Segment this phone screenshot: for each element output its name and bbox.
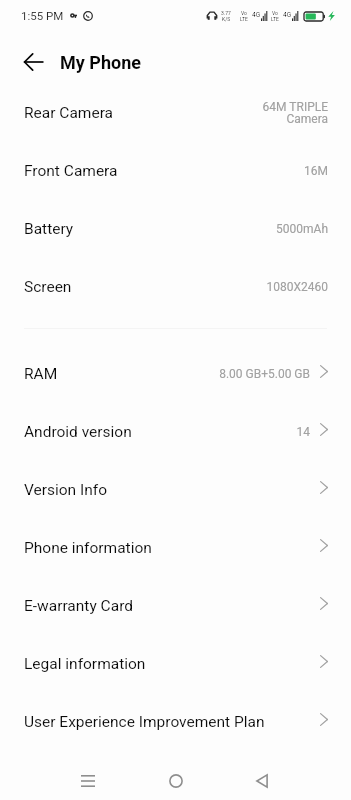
staticText: Screen	[24, 278, 72, 296]
staticText: Vo	[241, 10, 247, 16]
button[interactable]: Screen	[0, 258, 351, 316]
staticText: 1080X2460	[266, 280, 328, 294]
staticText: Phone information	[24, 539, 152, 557]
button[interactable]: Back	[238, 757, 286, 800]
button[interactable]: Legal information	[0, 635, 351, 693]
staticText: Vo	[272, 10, 278, 16]
staticText: Battery	[24, 220, 74, 238]
staticText: Front Camera	[24, 162, 118, 180]
staticText: K/S	[222, 16, 231, 22]
button[interactable]: Phone information	[0, 519, 351, 577]
button[interactable]: E-warranty Card	[0, 577, 351, 635]
button[interactable]: Version Info	[0, 461, 351, 519]
staticText: RAM	[24, 365, 58, 383]
staticText: 8.00 GB+5.00 GB	[219, 367, 310, 381]
button[interactable]: Battery	[0, 200, 351, 258]
staticText: Rear Camera	[24, 104, 114, 122]
staticText: LTE	[240, 16, 248, 22]
button[interactable]: Front Camera	[0, 142, 351, 200]
staticText: 5000mAh	[276, 222, 328, 236]
button[interactable]: Android version	[0, 403, 351, 461]
button[interactable]: Recent apps	[64, 757, 112, 800]
staticText: User Experience Improvement Plan	[24, 713, 265, 731]
button[interactable]: Rear Camera	[0, 84, 351, 142]
staticText: 3.77	[221, 10, 231, 16]
staticText: Android version	[24, 423, 132, 441]
button[interactable]: RAM	[0, 345, 351, 403]
staticText: 64M TRIPLE	[262, 100, 328, 114]
staticText: 16M	[304, 164, 328, 178]
staticText: LTE	[271, 16, 279, 22]
staticText: Camera	[286, 112, 328, 126]
staticText: E-warranty Card	[24, 597, 133, 615]
staticText: Legal information	[24, 655, 146, 673]
button[interactable]: Home	[152, 757, 200, 800]
staticText: My Phone	[60, 52, 141, 73]
staticText: 4G	[283, 11, 292, 19]
staticText: 4G	[252, 11, 261, 19]
button[interactable]: Back	[0, 40, 60, 84]
staticText: Version Info	[24, 481, 108, 499]
staticText: 14	[296, 425, 310, 439]
button[interactable]: User Experience Improvement Plan	[0, 693, 351, 751]
staticText: 1:55 PM	[21, 9, 64, 22]
